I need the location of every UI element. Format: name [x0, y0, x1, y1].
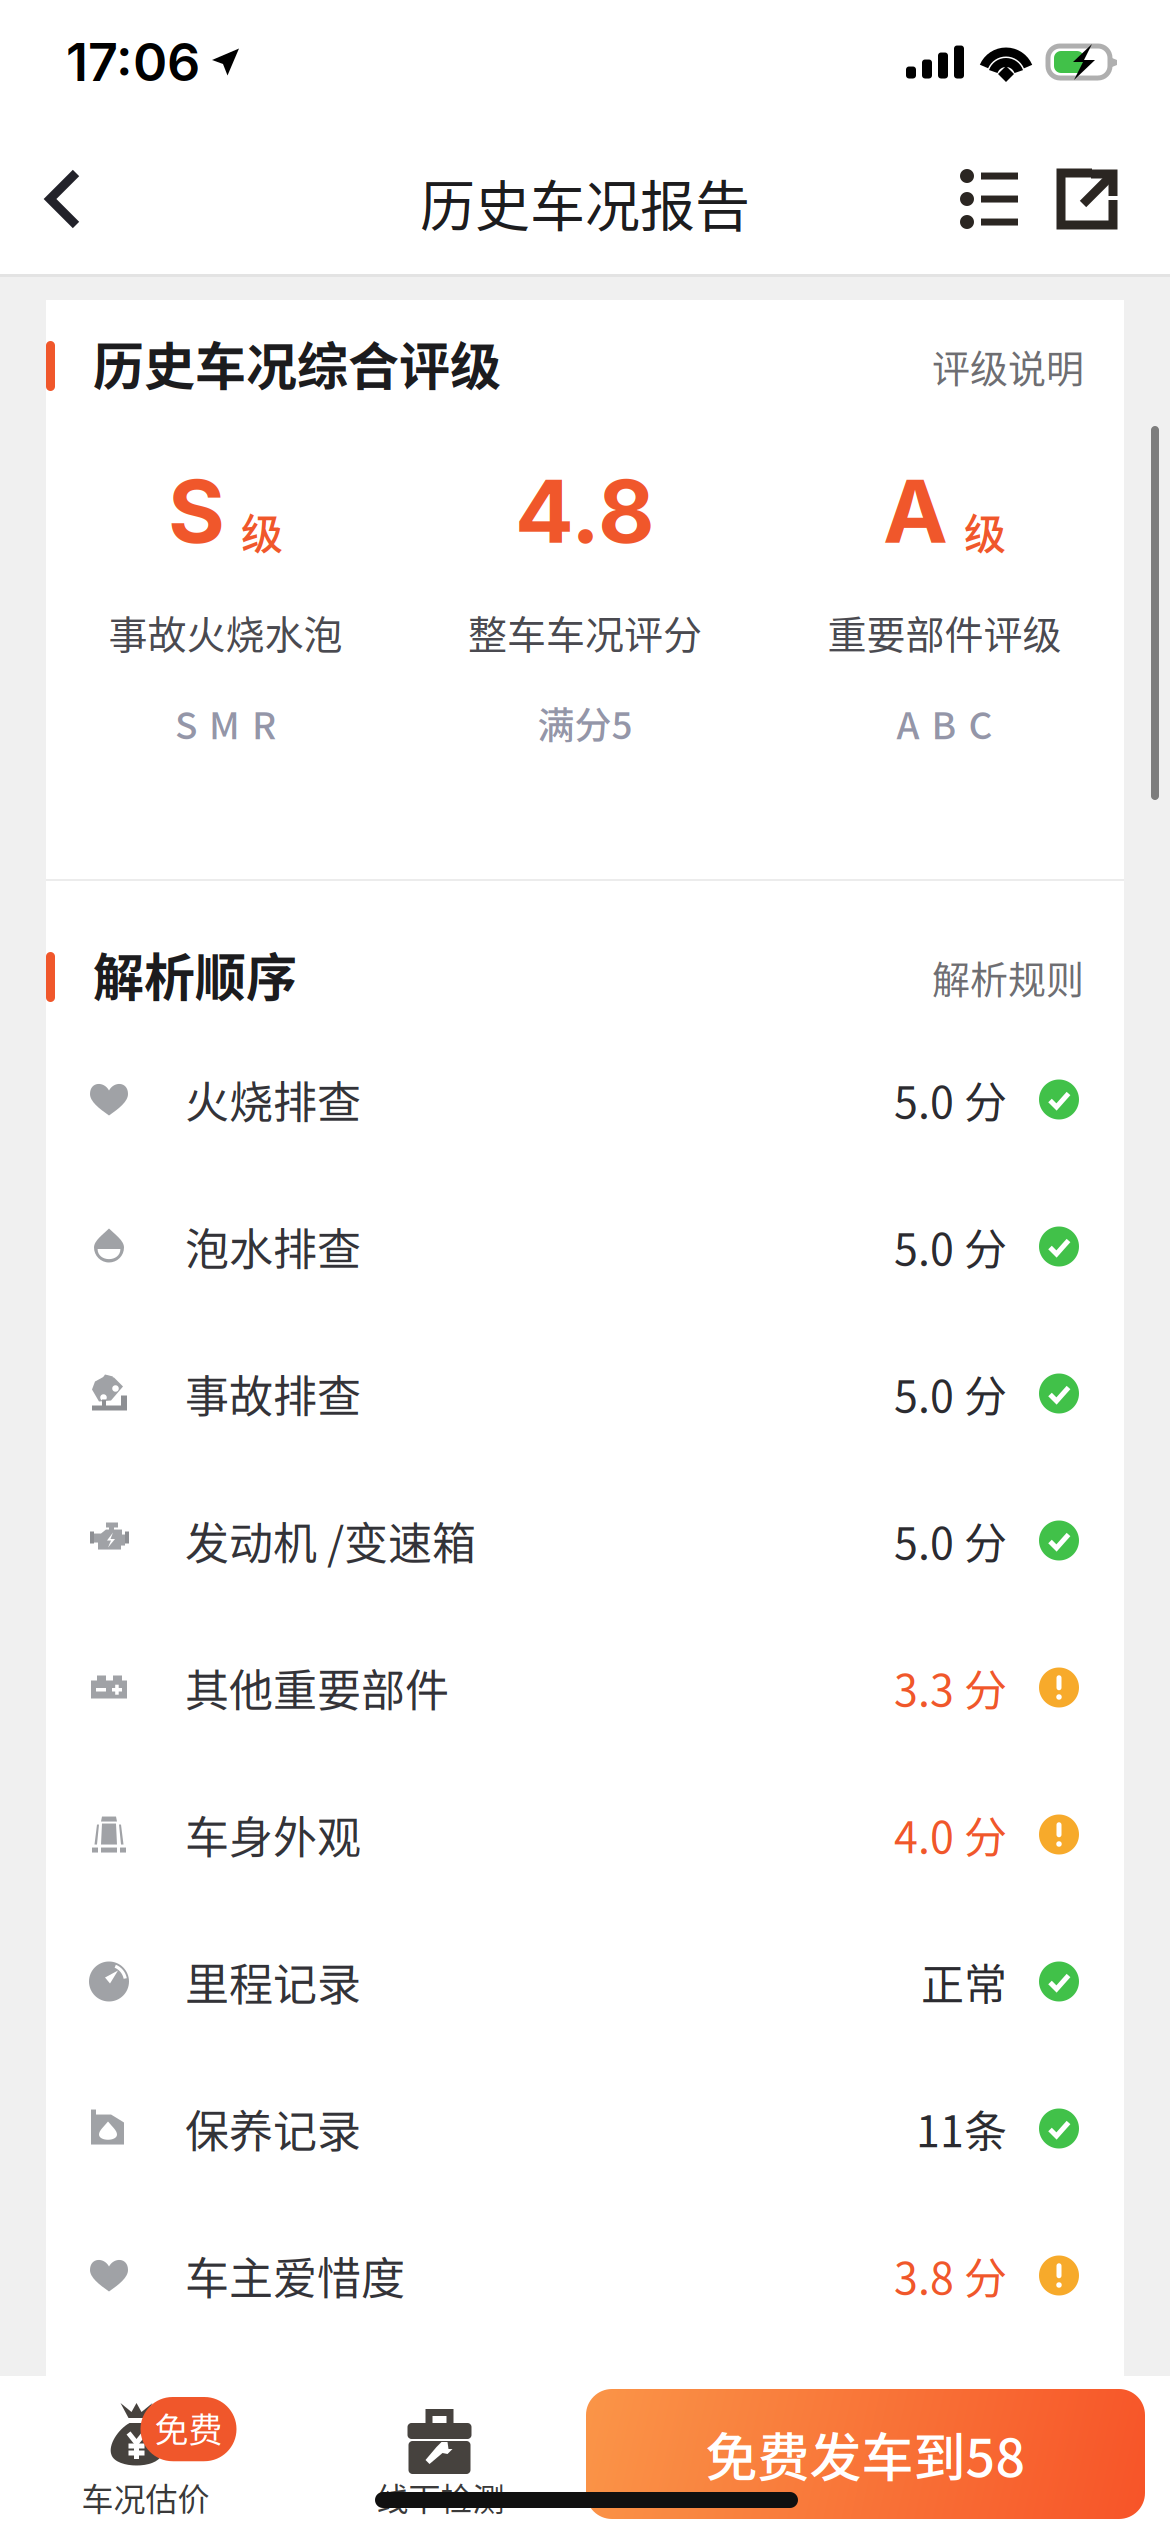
button[interactable]: 车主爱惜度 [46, 2202, 1124, 2349]
staticText: 5.0 分 [894, 1362, 1007, 1425]
button[interactable]: 事故排查 [46, 1320, 1124, 1467]
staticText: 3.3 分 [894, 1656, 1007, 1719]
staticText: S [168, 458, 225, 564]
staticText: 4.0 分 [894, 1803, 1007, 1866]
button[interactable]: 返回 [0, 124, 122, 274]
staticText: 免费 [154, 2403, 222, 2452]
staticText: 事故火烧水泡 [108, 604, 342, 660]
button[interactable]: 评级说明 [908, 341, 1124, 391]
staticText: 重要部件评级 [827, 604, 1061, 660]
staticText: 3.8 分 [894, 2244, 1007, 2307]
staticText: 评级说明 [932, 338, 1084, 393]
staticText: 历史车况综合评级 [93, 326, 501, 400]
staticText: 其他重要部件 [185, 1656, 449, 1719]
button[interactable]: 发动机 /变速箱 [46, 1467, 1124, 1614]
staticText: 5.0 分 [894, 1068, 1007, 1131]
button[interactable]: 里程记录 [46, 1908, 1124, 2055]
staticText: 保养记录 [185, 2097, 361, 2160]
staticText: 级 [241, 501, 283, 562]
staticText: 5.0 分 [894, 1215, 1007, 1278]
staticText: 满分5 [537, 696, 632, 750]
button[interactable]: 保养记录 [46, 2055, 1124, 2202]
staticText: 解析规则 [932, 949, 1084, 1004]
staticText: A B C [896, 696, 992, 750]
button[interactable]: 解析规则 [908, 952, 1124, 1002]
button[interactable]: 目录 [940, 124, 1036, 274]
staticText: 里程记录 [185, 1950, 361, 2013]
staticText: 11条 [916, 2097, 1007, 2160]
staticText: 5.0 分 [894, 1509, 1007, 1572]
staticText: 火烧排查 [185, 1068, 361, 1131]
staticText: 发动机 /变速箱 [185, 1509, 476, 1572]
staticText: 车况估价 [81, 2474, 209, 2520]
button[interactable]: 火烧排查 [46, 1026, 1124, 1173]
button[interactable]: 免费 [0, 2376, 185, 2532]
button[interactable]: 分享 [1036, 124, 1170, 274]
staticText: 泡水排查 [185, 1215, 361, 1278]
staticText: 级 [964, 501, 1006, 562]
staticText: 历史车况报告 [420, 162, 750, 242]
staticText: 整车车况评分 [468, 604, 702, 660]
staticText: 线下检测 [376, 2474, 504, 2520]
staticText: 免费发车到58 [705, 2416, 1025, 2492]
staticText: 事故排查 [185, 1362, 361, 1425]
staticText: 17:06 [66, 30, 200, 93]
staticText: 正常 [921, 1950, 1007, 2013]
button[interactable]: 泡水排查 [46, 1173, 1124, 1320]
staticText: 车身外观 [185, 1803, 361, 1866]
button[interactable]: 线下检测 [289, 2376, 474, 2532]
button[interactable]: 车身外观 [46, 1761, 1124, 1908]
staticText: 车主爱惜度 [185, 2244, 405, 2307]
staticText: 解析顺序 [93, 937, 297, 1011]
button[interactable]: 其他重要部件 [46, 1614, 1124, 1761]
staticText: A [883, 458, 948, 564]
staticText: 4.8 [515, 458, 655, 564]
staticText: S M R [175, 696, 276, 750]
button[interactable]: 免费发车到58 [586, 2389, 1145, 2519]
